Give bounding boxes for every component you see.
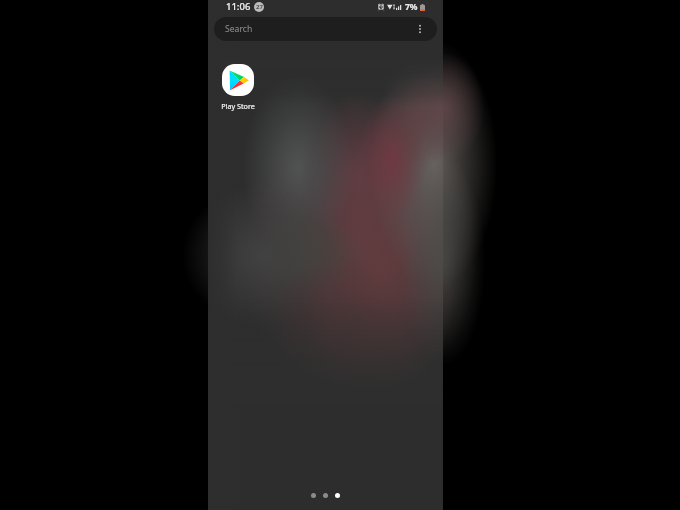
staticText: Play Store — [221, 101, 255, 111]
button[interactable]: Page 2 — [323, 493, 328, 498]
staticText: Search — [225, 23, 253, 35]
staticText: 7% — [405, 1, 418, 13]
button[interactable]: Page 3 — [335, 493, 340, 498]
button[interactable]: Search — [214, 17, 437, 41]
button[interactable]: Page 1 — [311, 493, 316, 498]
button[interactable]: More options — [413, 22, 427, 36]
staticText: 27 — [256, 3, 263, 11]
staticText: 11:06 — [226, 0, 251, 13]
button[interactable]: Play Store — [212, 64, 264, 111]
